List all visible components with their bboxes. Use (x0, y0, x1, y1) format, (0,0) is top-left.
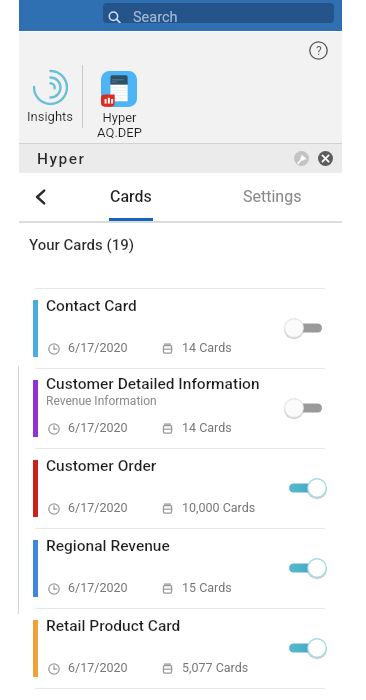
button[interactable]: Customer Detailed Information (0, 368, 366, 448)
button[interactable]: Hyper AQ.DEP (91, 71, 147, 140)
button[interactable] (283, 476, 327, 500)
staticText: 14 Cards (182, 420, 232, 435)
staticText: Customer Detailed Information (46, 375, 260, 393)
button[interactable]: Back (26, 182, 56, 212)
staticText: 5,077 Cards (182, 660, 249, 675)
button[interactable]: Settings (232, 173, 312, 220)
staticText: 6/17/2020 (68, 580, 128, 595)
button[interactable]: Customer Order (0, 448, 366, 528)
staticText: 6/17/2020 (68, 500, 128, 515)
staticText: 15 Cards (182, 580, 232, 595)
button[interactable]: Close (318, 151, 333, 166)
button[interactable]: Search (103, 3, 334, 23)
staticText: Search (133, 9, 178, 23)
staticText: Hyper (37, 150, 86, 168)
button[interactable]: Insights (24, 70, 76, 124)
staticText: Revenue Information (46, 394, 157, 408)
button[interactable]: Help (309, 41, 328, 60)
staticText: 6/17/2020 (68, 340, 128, 355)
button[interactable]: Retail Product Card (0, 608, 366, 688)
staticText: 14 Cards (182, 340, 232, 355)
staticText: Customer Order (46, 457, 157, 475)
staticText: Contact Card (46, 297, 137, 315)
staticText: Hyper AQ.DEP (97, 110, 142, 140)
button[interactable] (283, 396, 327, 420)
staticText: 6/17/2020 (68, 420, 128, 435)
staticText: Retail Product Card (46, 617, 181, 635)
button[interactable] (283, 556, 327, 580)
button[interactable] (283, 316, 327, 340)
staticText: Your Cards (19) (29, 236, 134, 254)
button[interactable]: Contact Card (0, 288, 366, 368)
staticText: Insights (27, 109, 74, 124)
staticText: 10,000 Cards (182, 500, 256, 515)
staticText: ? (316, 44, 322, 58)
button[interactable] (283, 636, 327, 660)
staticText: 6/17/2020 (68, 660, 128, 675)
staticText: Cards (110, 187, 152, 206)
button[interactable]: Cards (96, 173, 166, 220)
button[interactable]: Regional Revenue (0, 528, 366, 608)
staticText: Regional Revenue (46, 537, 170, 555)
button[interactable]: Pin (294, 151, 309, 166)
staticText: Settings (243, 187, 302, 206)
